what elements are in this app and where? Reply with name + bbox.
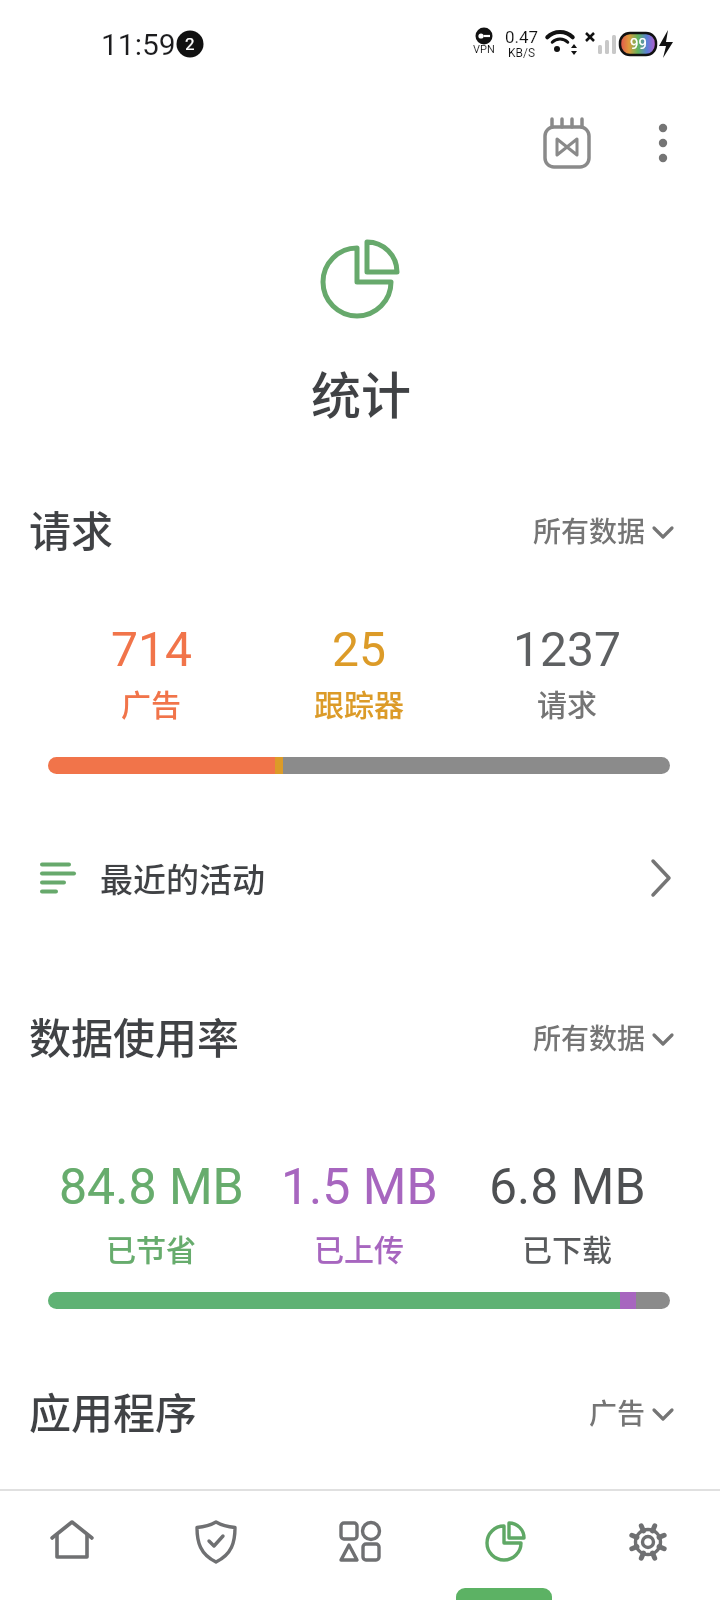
button[interactable]	[0, 1489, 144, 1600]
staticText: 广告	[589, 1392, 646, 1433]
staticText: 99	[630, 35, 647, 53]
staticText: 所有数据	[533, 510, 646, 551]
button[interactable]	[576, 1489, 720, 1600]
button[interactable]	[535, 111, 599, 175]
staticText: 广告	[121, 681, 181, 721]
staticText: 已下载	[522, 1226, 612, 1266]
button[interactable]	[639, 111, 687, 175]
staticText: 已节省	[106, 1226, 196, 1266]
staticText: 统计	[311, 356, 411, 426]
staticText: VPN	[473, 43, 495, 56]
staticText: 已上传	[314, 1226, 404, 1266]
staticText: 0.47	[505, 27, 539, 47]
button[interactable]: 所有数据	[460, 500, 680, 560]
staticText: 84.8 MB	[59, 1158, 244, 1217]
staticText: 请求	[537, 681, 597, 721]
staticText: 请求	[29, 498, 114, 559]
button[interactable]: 所有数据	[460, 1007, 680, 1067]
staticText: 所有数据	[533, 1017, 646, 1058]
staticText: 11:59	[101, 27, 176, 62]
staticText: 6.8 MB	[489, 1158, 646, 1217]
staticText: 1237	[513, 621, 621, 677]
button[interactable]: 广告	[460, 1382, 680, 1442]
staticText: 应用程序	[29, 1380, 198, 1441]
staticText: 跟踪器	[314, 681, 404, 721]
staticText: 25	[332, 621, 386, 677]
staticText: KB/S	[508, 46, 536, 60]
button[interactable]	[288, 1489, 432, 1600]
button[interactable]: 最近的活动	[0, 840, 720, 916]
button[interactable]	[432, 1489, 576, 1600]
staticText: 数据使用率	[29, 1005, 240, 1066]
staticText: 最近的活动	[100, 854, 265, 902]
staticText: 1.5 MB	[281, 1158, 438, 1217]
button[interactable]	[144, 1489, 288, 1600]
staticText: 714	[111, 621, 192, 677]
staticText: 2	[185, 34, 195, 54]
